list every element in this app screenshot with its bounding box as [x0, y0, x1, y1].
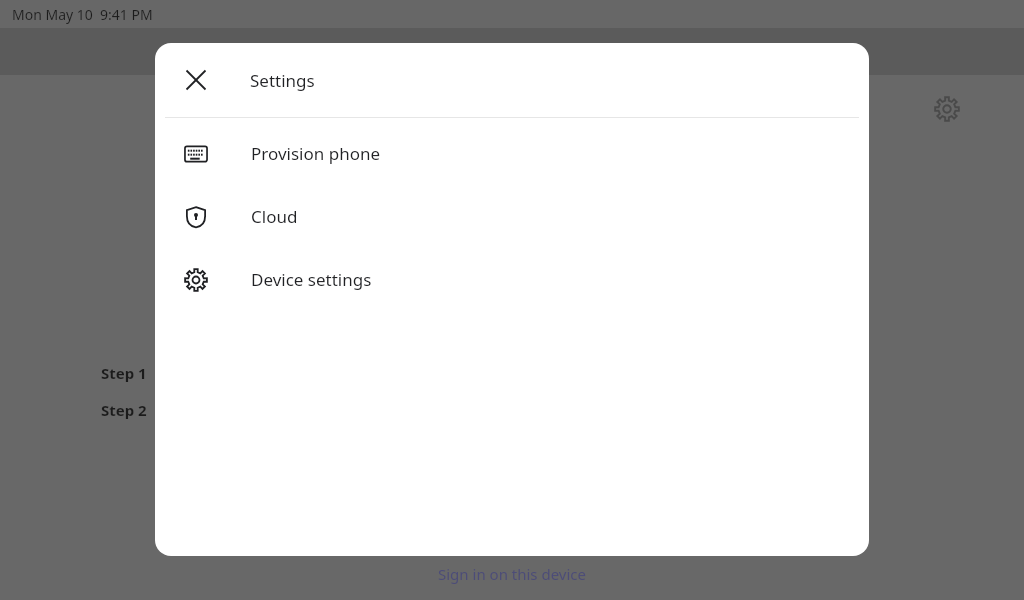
staticText: Step 2 [101, 400, 147, 420]
button[interactable]: Provision phone [155, 122, 869, 185]
staticText: Provision phone [251, 142, 381, 165]
staticText: Cloud [251, 205, 298, 228]
button[interactable]: Close [172, 56, 220, 104]
staticText: Mon May 10 9:41 PM [12, 5, 153, 24]
button[interactable]: Close [155, 43, 869, 117]
staticText: Sign in on this device [438, 564, 586, 584]
button[interactable]: Settings [923, 85, 971, 133]
staticText: Step 1 [101, 363, 147, 383]
button[interactable]: Sign in on this device [430, 562, 594, 586]
button[interactable]: Device settings [155, 248, 869, 311]
button[interactable]: Cloud [155, 185, 869, 248]
staticText: Settings [250, 69, 315, 92]
staticText: Device settings [251, 268, 372, 291]
